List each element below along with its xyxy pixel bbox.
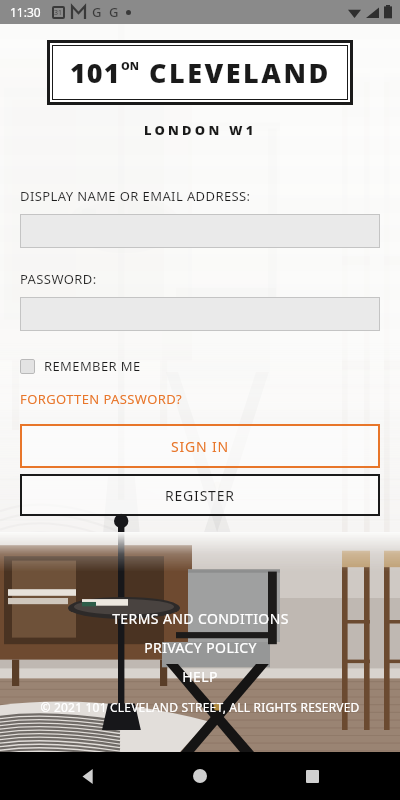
staticText: © 2021 101 CLEVELAND STREET, ALL RIGHTS … xyxy=(40,699,360,715)
staticText: DISPLAY NAME OR EMAIL ADDRESS: xyxy=(20,187,251,205)
staticText: 31 xyxy=(54,8,63,18)
staticText: 101 xyxy=(70,54,121,91)
staticText: PASSWORD: xyxy=(20,270,97,288)
staticText: SIGN IN xyxy=(171,437,229,456)
staticText: 11:30 xyxy=(10,4,41,20)
button[interactable]: Home xyxy=(176,752,224,800)
button[interactable]: TERMS AND CONDITIONS xyxy=(112,606,289,631)
button[interactable]: Recent apps xyxy=(288,752,336,800)
button[interactable]: Back xyxy=(64,752,112,800)
staticText: LONDON W1 xyxy=(144,121,257,139)
button[interactable]: FORGOTTEN PASSWORD? xyxy=(20,390,183,408)
staticText: FORGOTTEN PASSWORD? xyxy=(20,390,183,408)
staticText: G xyxy=(92,3,102,21)
button[interactable] xyxy=(20,297,380,331)
staticText: PRIVACY POLICY xyxy=(144,638,257,657)
button[interactable]: REMEMBER ME xyxy=(20,357,141,375)
staticText: G xyxy=(109,3,119,21)
staticText: ON xyxy=(121,58,139,73)
button[interactable]: PRIVACY POLICY xyxy=(144,635,257,660)
staticText: REMEMBER ME xyxy=(44,357,141,375)
staticText: CLEVELAND xyxy=(149,54,331,91)
staticText: TERMS AND CONDITIONS xyxy=(112,609,289,628)
staticText: REGISTER xyxy=(165,486,235,505)
button[interactable]: REGISTER xyxy=(20,474,380,516)
button[interactable] xyxy=(20,214,380,248)
button[interactable]: SIGN IN xyxy=(20,424,380,468)
button[interactable]: HELP xyxy=(182,664,218,689)
staticText: HELP xyxy=(182,667,218,686)
